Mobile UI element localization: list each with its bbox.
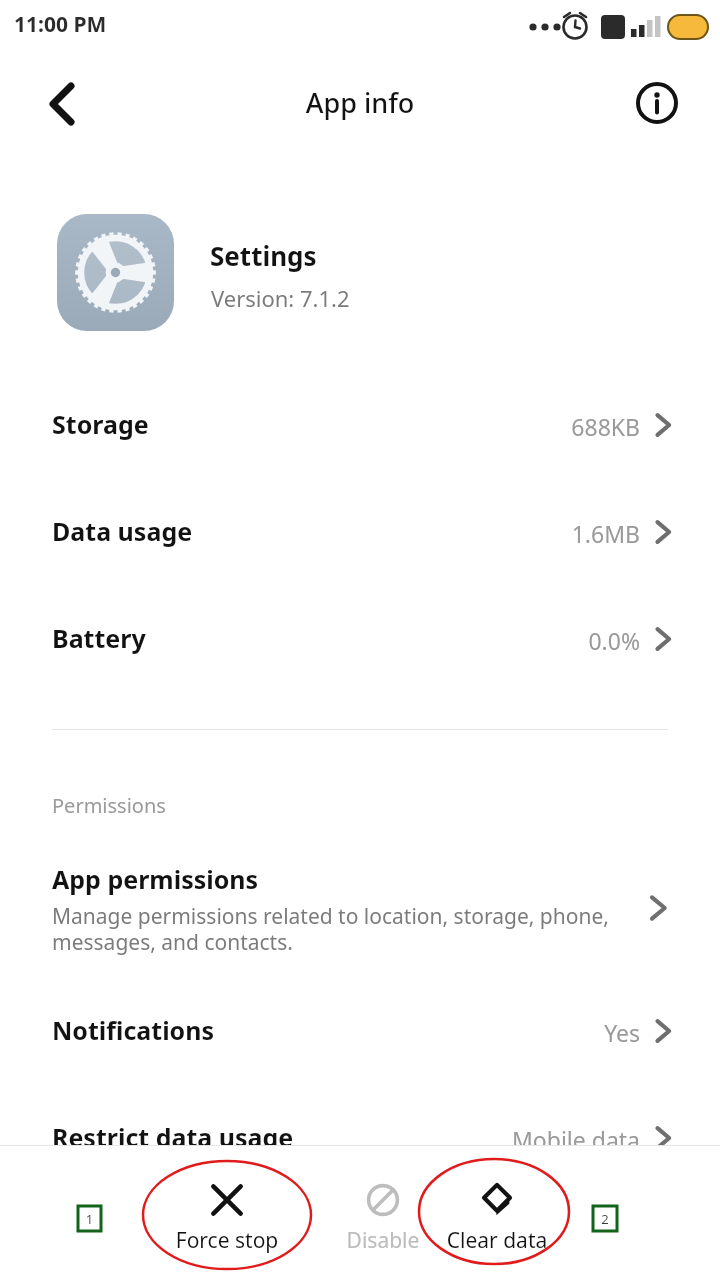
button[interactable]: Notifications <box>0 987 720 1073</box>
staticText: Settings <box>210 238 317 273</box>
button[interactable]: Disable <box>308 1180 458 1266</box>
staticText: 1 <box>78 1210 101 1232</box>
staticText: Clear data <box>422 1226 572 1258</box>
button[interactable]: Battery <box>0 595 720 681</box>
staticText: Permissions <box>52 792 166 819</box>
staticText: Battery <box>52 621 146 655</box>
button[interactable]: App permissions <box>0 852 720 964</box>
staticText: Restrict data usage <box>52 1120 294 1154</box>
staticText: 11:00 PM <box>14 10 107 39</box>
button[interactable]: Storage <box>0 381 720 467</box>
staticText: 2 <box>593 1210 617 1232</box>
button[interactable]: Restrict data usage <box>0 1094 720 1180</box>
staticText: App info <box>210 84 510 128</box>
staticText: 1.6MB <box>340 518 640 552</box>
staticText: 0.0% <box>340 625 640 659</box>
staticText: Mobile data <box>340 1124 640 1158</box>
staticText: 688KB <box>340 411 640 445</box>
button[interactable]: Back <box>28 72 96 136</box>
button[interactable]: App details <box>626 72 688 134</box>
button[interactable]: Clear data <box>422 1180 572 1266</box>
staticText: Manage permissions related to location, … <box>52 902 609 957</box>
button[interactable]: Data usage <box>0 488 720 574</box>
staticText: Version: 7.1.2 <box>211 283 350 313</box>
button[interactable]: Force stop <box>152 1180 302 1266</box>
staticText: App permissions <box>52 862 259 896</box>
staticText: Force stop <box>152 1226 302 1258</box>
staticText: Disable <box>308 1226 458 1258</box>
staticText: Yes <box>340 1017 640 1051</box>
staticText: Notifications <box>52 1013 215 1047</box>
staticText: Storage <box>52 407 149 441</box>
staticText: Data usage <box>52 514 193 548</box>
